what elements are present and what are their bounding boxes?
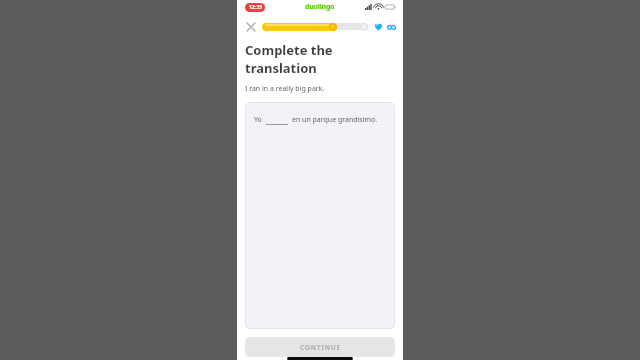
staticText: duolingo — [305, 2, 335, 12]
button[interactable]: Hearts — [373, 21, 384, 32]
staticText: Yo — [254, 115, 262, 125]
button[interactable]: Unlimited hearts — [386, 22, 396, 32]
staticText: I ran in a really big park. — [245, 84, 325, 94]
staticText: Complete the translation — [245, 41, 403, 77]
staticText: en un parque grandisimo. — [292, 115, 378, 125]
button[interactable]: Close — [244, 20, 257, 33]
staticText: 12:33 — [249, 4, 262, 11]
button[interactable]: Yo — [245, 102, 395, 329]
button[interactable]: CONTINUE — [245, 337, 395, 357]
button[interactable]: Lesson progress — [262, 22, 368, 31]
staticText: CONTINUE — [300, 343, 341, 352]
